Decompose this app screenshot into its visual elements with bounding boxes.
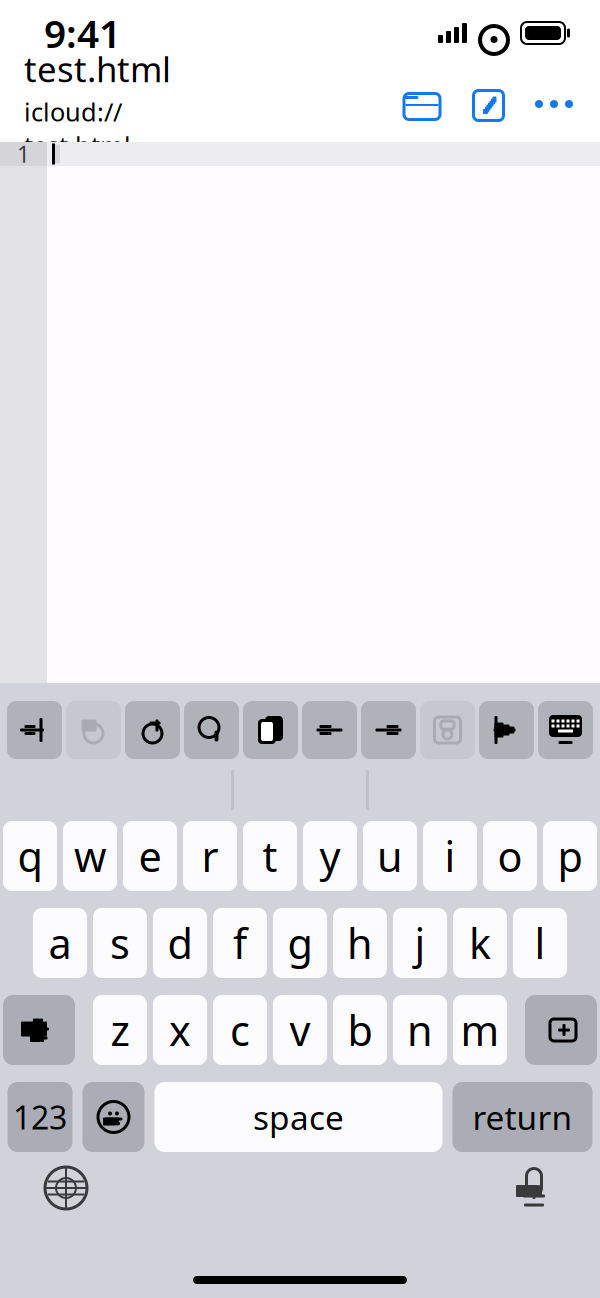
button[interactable]: i [423, 821, 477, 891]
staticText: icloud://test.html [24, 95, 131, 162]
button[interactable]: x [153, 995, 207, 1065]
button[interactable]: g [273, 908, 327, 978]
button[interactable]: a [33, 908, 87, 978]
button[interactable]: Cursor left [302, 701, 357, 759]
staticText: p [557, 829, 582, 883]
button[interactable]: s [93, 908, 147, 978]
button[interactable]: y [303, 821, 357, 891]
button[interactable]: e [123, 821, 177, 891]
staticText: test.html [24, 46, 171, 92]
button[interactable]: Save [420, 701, 475, 759]
button[interactable]: o [483, 821, 537, 891]
button[interactable]: Delete [525, 995, 597, 1065]
staticText: e [138, 829, 161, 883]
button[interactable]: Hide keyboard [538, 701, 593, 759]
button[interactable]: Shift [3, 995, 75, 1065]
button[interactable]: Redo [125, 701, 180, 759]
button[interactable]: More [530, 80, 578, 128]
staticText: s [110, 916, 130, 970]
button[interactable]: Emoji [82, 1082, 144, 1152]
button[interactable]: n [393, 995, 447, 1065]
staticText: q [17, 829, 42, 883]
button[interactable]: r [183, 821, 237, 891]
staticText: t [262, 829, 277, 883]
staticText: 1 [17, 139, 30, 169]
button[interactable]: New file [466, 80, 514, 128]
staticText: z [110, 1003, 129, 1057]
staticText: w [74, 829, 106, 883]
button[interactable]: v [273, 995, 327, 1065]
staticText: c [230, 1003, 250, 1057]
staticText: i [444, 829, 455, 883]
button[interactable]: Cursor right [361, 701, 416, 759]
staticText: return [472, 1095, 572, 1139]
staticText: n [407, 1003, 433, 1057]
button[interactable]: u [363, 821, 417, 891]
button[interactable]: c [213, 995, 267, 1065]
staticText: m [460, 1003, 499, 1057]
staticText: space [253, 1095, 344, 1139]
button[interactable]: return [452, 1082, 592, 1152]
button[interactable]: h [333, 908, 387, 978]
staticText: h [347, 916, 373, 970]
button[interactable]: b [333, 995, 387, 1065]
button[interactable]: Undo [66, 701, 121, 759]
staticText: l [534, 916, 545, 970]
staticText: g [287, 916, 312, 970]
staticText: x [169, 1003, 191, 1057]
staticText: o [497, 829, 522, 883]
staticText: y [319, 829, 340, 883]
staticText: j [414, 916, 425, 970]
staticText: b [347, 1003, 372, 1057]
staticText: v [289, 1003, 310, 1057]
button[interactable]: 123 [7, 1082, 72, 1152]
staticText: r [201, 829, 218, 883]
button[interactable]: m [453, 995, 507, 1065]
staticText: 9:41 [44, 7, 121, 59]
button[interactable]: q [3, 821, 57, 891]
button[interactable]: l [513, 908, 567, 978]
button[interactable]: Run [479, 701, 534, 759]
button[interactable]: p [543, 821, 597, 891]
button[interactable]: d [153, 908, 207, 978]
button[interactable]: j [393, 908, 447, 978]
button[interactable]: space [154, 1082, 442, 1152]
button[interactable]: Copy [243, 701, 298, 759]
staticText: d [167, 916, 192, 970]
staticText: u [377, 829, 403, 883]
button[interactable]: w [63, 821, 117, 891]
button[interactable]: z [93, 995, 147, 1065]
button[interactable]: k [453, 908, 507, 978]
staticText: a [48, 916, 71, 970]
staticText: 123 [13, 1096, 67, 1138]
button[interactable]: Indent [7, 701, 62, 759]
button[interactable]: t [243, 821, 297, 891]
staticText: f [233, 916, 247, 970]
button[interactable]: Dictation [504, 1158, 564, 1218]
button[interactable]: Find [184, 701, 239, 759]
button[interactable]: Browse files [398, 80, 446, 128]
button[interactable]: Switch keyboard [36, 1158, 96, 1218]
button[interactable]: f [213, 908, 267, 978]
staticText: k [469, 916, 491, 970]
